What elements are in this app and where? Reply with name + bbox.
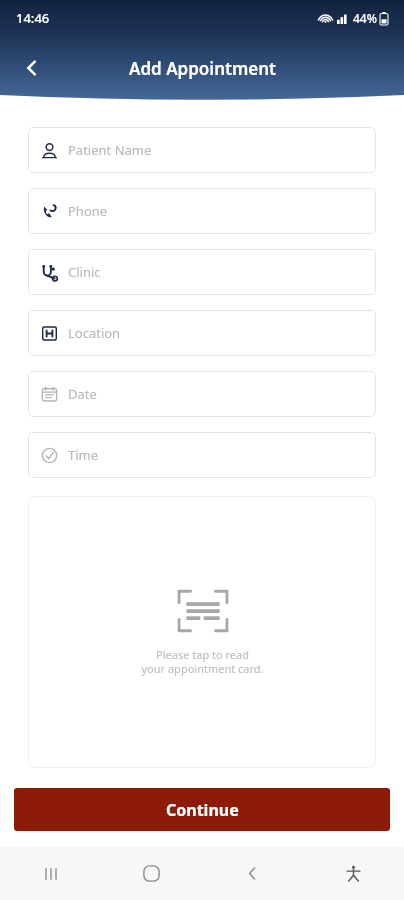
button[interactable]: Accessibility <box>303 847 404 900</box>
staticText: Phone <box>68 202 108 220</box>
button[interactable]: Patient Name <box>28 127 376 173</box>
button[interactable]: Back <box>202 847 303 900</box>
button[interactable]: Date <box>28 371 376 417</box>
staticText: Patient Name <box>68 141 152 159</box>
staticText: Add Appointment <box>129 57 276 80</box>
button[interactable]: Continue <box>14 788 390 831</box>
staticText: Date <box>68 385 97 403</box>
button[interactable]: Home <box>101 847 202 900</box>
staticText: Location <box>68 324 121 342</box>
staticText: Time <box>68 446 99 464</box>
button[interactable]: Back <box>12 48 52 88</box>
button[interactable]: Clinic <box>28 249 376 295</box>
staticText: 44% <box>353 10 377 26</box>
staticText: Clinic <box>68 263 101 281</box>
button[interactable]: Phone <box>28 188 376 234</box>
staticText: Please tap to read your appointment card… <box>141 647 264 676</box>
button[interactable]: Recents <box>0 847 101 900</box>
button[interactable]: Time <box>28 432 376 478</box>
staticText: Continue <box>166 799 239 821</box>
button[interactable]: Please tap to read your appointment card… <box>28 496 376 768</box>
staticText: 14:46 <box>16 9 50 27</box>
button[interactable]: Location <box>28 310 376 356</box>
